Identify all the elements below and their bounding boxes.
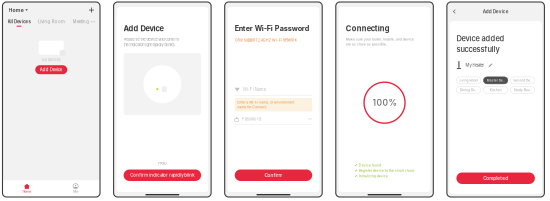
- button[interactable]: Help: [124, 161, 201, 165]
- button[interactable]: All Devices: [7, 19, 30, 27]
- button[interactable]: Second Be..: [510, 77, 535, 84]
- button[interactable]: Meeting: [73, 19, 89, 24]
- staticText: Wi-Fi Name: [243, 87, 266, 92]
- staticText: Initializing device: [359, 174, 388, 178]
- staticText: Device found: [359, 163, 381, 167]
- staticText: Living Room: [38, 19, 65, 24]
- button[interactable]: Master Be..: [483, 77, 508, 84]
- staticText: Meeting: [73, 19, 89, 24]
- button[interactable]: Add device: [89, 8, 94, 13]
- staticText: Enter a Wi-Fi name, or environment name …: [237, 100, 294, 109]
- button[interactable]: Home: [8, 7, 28, 13]
- staticText: 100%: [372, 97, 396, 108]
- staticText: Completed: [483, 175, 508, 181]
- staticText: Study Roo..: [514, 88, 532, 92]
- staticText: Home: [8, 7, 24, 13]
- staticText: Only support 2.4GHz Wi-Fi network: [235, 38, 297, 42]
- button[interactable]: Living Room: [456, 77, 481, 84]
- staticText: Me: [73, 190, 78, 194]
- staticText: No devices: [42, 58, 61, 62]
- button[interactable]: Rename device: [488, 63, 492, 67]
- button[interactable]: Confirm indicator rapidly blink: [124, 169, 201, 181]
- staticText: Help: [158, 161, 166, 165]
- staticText: Second Be..: [513, 78, 532, 82]
- staticText: Password: [242, 116, 262, 122]
- staticText: Confirm: [264, 172, 282, 178]
- button[interactable]: Dining Ro..: [456, 86, 481, 93]
- staticText: Kitchen: [490, 88, 502, 92]
- button[interactable]: Completed: [456, 172, 535, 184]
- button[interactable]: Study Roo..: [510, 86, 535, 93]
- button[interactable]: Add Device: [35, 65, 67, 74]
- staticText: Dining Ro..: [460, 88, 477, 92]
- button[interactable]: Home: [2, 184, 51, 194]
- staticText: Register device to the smart cloud: [359, 168, 414, 173]
- button[interactable]: Me: [51, 184, 100, 194]
- staticText: Enter Wi-Fi Password: [235, 24, 310, 33]
- staticText: All Devices: [7, 19, 30, 24]
- staticText: Device added successfully: [456, 34, 504, 54]
- button[interactable]: Kitchen: [483, 86, 508, 93]
- staticText: Home: [22, 190, 31, 194]
- staticText: Connecting: [346, 24, 390, 33]
- staticText: Confirm indicator rapidly blink: [130, 173, 194, 178]
- button[interactable]: Living Room: [38, 19, 65, 24]
- staticText: Add Device: [483, 9, 509, 14]
- staticText: Add Device: [40, 67, 63, 72]
- button[interactable]: More: [89, 19, 95, 23]
- staticText: Master Be..: [487, 78, 505, 82]
- staticText: Make sure your router, mobile, and devic…: [346, 37, 414, 46]
- button[interactable]: Back: [453, 9, 455, 14]
- staticText: My Heater: [465, 63, 484, 68]
- staticText: Living Room: [459, 78, 479, 82]
- staticText: Please tie the device and confirm the in…: [124, 37, 179, 47]
- staticText: Add Device: [124, 24, 164, 33]
- button[interactable]: Confirm: [235, 169, 312, 181]
